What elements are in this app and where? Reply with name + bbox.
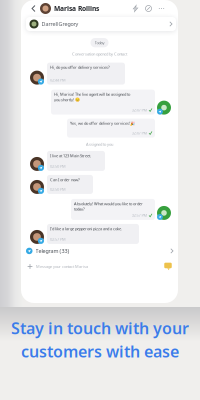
staticText: Stay in touch with your	[11, 317, 189, 339]
staticText: 02:47 PM	[131, 107, 147, 113]
staticText: customers with ease	[21, 341, 179, 362]
staticText: Hi, do you offer delivery services?	[50, 65, 110, 70]
staticText: 02:57 PM	[50, 237, 66, 242]
staticText: Conversation opened by Contact	[72, 51, 127, 57]
button[interactable]: Telegram (33)	[21, 244, 178, 258]
button[interactable]: More options	[155, 0, 168, 17]
button[interactable]: Resolve conversation	[142, 0, 155, 17]
staticText: Hi, Marisa! The live agent will be assig…	[54, 92, 130, 102]
button[interactable]: Quick replies	[129, 0, 142, 17]
staticText: 02:50 PM	[50, 187, 66, 192]
staticText: Yes, we do offer delivery services!🎉	[70, 121, 135, 126]
staticText: 02:44 PM	[50, 77, 66, 83]
staticText: Assigned to you	[86, 142, 113, 147]
button[interactable]: Canned responses	[163, 259, 173, 273]
staticText: Message your contact Marisa	[36, 264, 88, 269]
button[interactable]: Attach	[25, 259, 35, 273]
staticText: 02:50 PM	[50, 164, 66, 169]
staticText: I'd like a large pepperoni pizza and a c…	[50, 226, 122, 231]
button[interactable]: Darrell Gregory	[26, 17, 176, 31]
staticText: Absolutely! What would you like to order…	[74, 201, 143, 211]
staticText: I live at 123 Main Street.	[50, 153, 91, 158]
button[interactable]: Back	[27, 0, 40, 17]
staticText: Marisa Rollins	[54, 4, 99, 13]
staticText: 02:57 PM	[131, 213, 147, 218]
staticText: Can I order now?	[50, 177, 80, 182]
staticText: Darrell Gregory	[41, 20, 78, 28]
staticText: Today	[94, 40, 104, 45]
staticText: Telegram (33)	[35, 247, 69, 254]
staticText: 02:47 PM	[131, 130, 147, 136]
